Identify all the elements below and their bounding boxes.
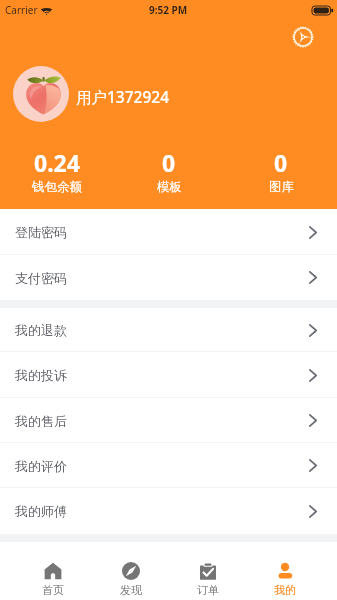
- button[interactable]: 0.24: [0, 147, 113, 195]
- button[interactable]: 我的评价: [0, 443, 337, 488]
- staticText: 模板: [157, 179, 182, 195]
- staticText: 我的评价: [15, 458, 67, 474]
- staticText: 用户1372924: [76, 86, 170, 107]
- staticText: 图库: [269, 179, 294, 195]
- button[interactable]: Settings: [292, 26, 314, 48]
- button[interactable]: 订单: [169, 562, 246, 598]
- button[interactable]: 0: [113, 147, 225, 195]
- staticText: 登陆密码: [15, 224, 67, 240]
- button[interactable]: 发现: [92, 562, 169, 598]
- staticText: 0.24: [34, 147, 80, 178]
- staticText: 我的售后: [15, 413, 67, 429]
- staticText: 订单: [197, 583, 219, 597]
- staticText: 钱包余额: [32, 179, 82, 195]
- staticText: 发现: [120, 583, 142, 597]
- staticText: 支付密码: [15, 270, 67, 286]
- button[interactable]: 我的师傅: [0, 488, 337, 534]
- staticText: 我的: [274, 583, 296, 597]
- staticText: 0: [274, 147, 288, 178]
- button[interactable]: 0: [225, 147, 337, 195]
- staticText: 首页: [42, 583, 64, 597]
- staticText: 我的退款: [15, 322, 67, 338]
- button[interactable]: 我的: [246, 562, 323, 598]
- button[interactable]: 登陆密码: [0, 209, 337, 255]
- button[interactable]: 我的退款: [0, 308, 337, 352]
- button[interactable]: 支付密码: [0, 255, 337, 300]
- staticText: 我的师傅: [15, 503, 67, 519]
- button[interactable]: 首页: [14, 562, 92, 598]
- staticText: Carrier: [5, 3, 38, 17]
- button[interactable]: 我的投诉: [0, 352, 337, 398]
- button[interactable]: 我的售后: [0, 398, 337, 443]
- staticText: 9:52 PM: [149, 3, 188, 17]
- staticText: 我的投诉: [15, 367, 67, 383]
- staticText: 0: [162, 147, 176, 178]
